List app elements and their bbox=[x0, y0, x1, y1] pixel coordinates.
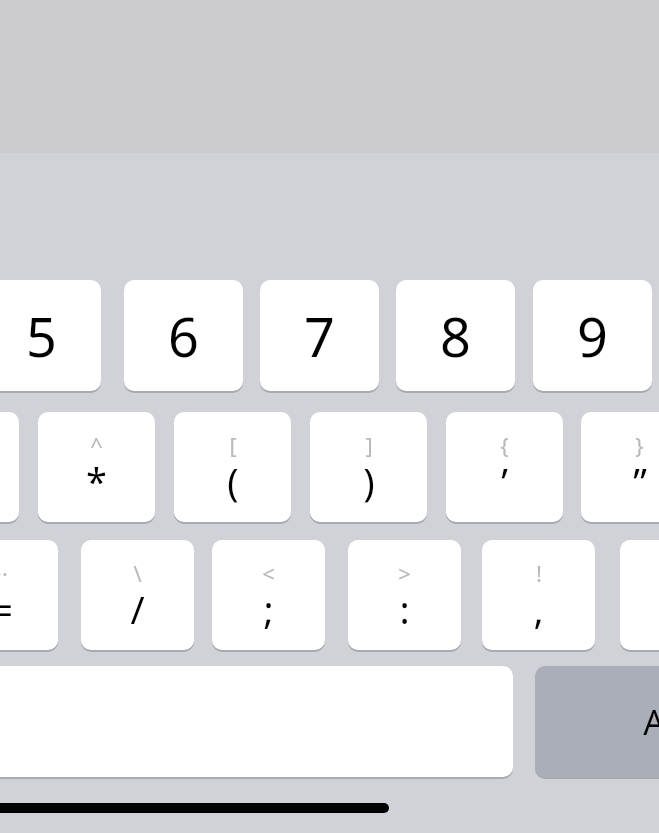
staticText: ! bbox=[536, 558, 542, 588]
button[interactable]: 6 bbox=[124, 280, 243, 391]
staticText: ’ bbox=[501, 455, 508, 507]
button[interactable]: ? bbox=[620, 540, 659, 650]
staticText: = bbox=[0, 583, 13, 635]
staticText: } bbox=[635, 430, 644, 460]
staticText: > bbox=[398, 558, 411, 588]
staticText: < bbox=[262, 558, 275, 588]
staticText: 8 bbox=[440, 299, 471, 373]
staticText: ^ bbox=[90, 430, 103, 460]
button[interactable]: ·· bbox=[0, 540, 58, 650]
button[interactable]: 8 bbox=[396, 280, 515, 391]
staticText: : bbox=[399, 583, 410, 635]
staticText: ] bbox=[365, 430, 373, 460]
staticText: * bbox=[86, 455, 107, 507]
button[interactable]: < bbox=[212, 540, 325, 650]
button[interactable]: ^ bbox=[38, 412, 155, 522]
button[interactable]: } bbox=[581, 412, 659, 522]
button[interactable]: & bbox=[0, 412, 19, 522]
button[interactable]: { bbox=[446, 412, 563, 522]
button[interactable]: 7 bbox=[260, 280, 379, 391]
staticText: [ bbox=[229, 430, 237, 460]
button[interactable]: \ bbox=[81, 540, 194, 650]
staticText: 5 bbox=[26, 299, 57, 373]
staticText: { bbox=[500, 430, 509, 460]
staticText: / bbox=[130, 583, 145, 635]
staticText: \ bbox=[133, 558, 142, 588]
staticText: ” bbox=[633, 455, 647, 507]
staticText: 6 bbox=[168, 299, 199, 373]
staticText: , bbox=[533, 583, 544, 635]
staticText: ( bbox=[227, 455, 239, 507]
staticText: 9 bbox=[577, 299, 608, 373]
button[interactable]: [ bbox=[174, 412, 291, 522]
staticText: ; bbox=[263, 583, 274, 635]
staticText: ·· bbox=[0, 558, 8, 588]
button[interactable]: Return bbox=[535, 666, 659, 777]
button[interactable]: ! bbox=[482, 540, 595, 650]
staticText: ) bbox=[363, 455, 375, 507]
button[interactable]: ] bbox=[310, 412, 427, 522]
button[interactable]: 9 bbox=[533, 280, 652, 391]
button[interactable]: > bbox=[348, 540, 461, 650]
button[interactable]: 5 bbox=[0, 280, 101, 391]
staticText: 7 bbox=[304, 299, 335, 373]
staticText: ABC bbox=[643, 699, 659, 745]
